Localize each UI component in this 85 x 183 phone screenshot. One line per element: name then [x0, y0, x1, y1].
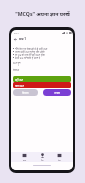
button[interactable]: सही उत्तर	[13, 76, 71, 82]
staticText: गलत उत्तर	[15, 84, 24, 87]
button[interactable]: गलत उत्तर	[13, 82, 71, 88]
button[interactable]: होम	[20, 152, 29, 162]
button[interactable]: रैंक	[38, 152, 47, 162]
staticText: "MCQs" अपना ज्ञान परखें	[15, 10, 70, 17]
staticText: 9:41	[14, 31, 19, 34]
button[interactable]: Back	[13, 37, 18, 42]
button[interactable]: अगला	[43, 89, 71, 96]
staticText: अपना सही उत्तर चुनिए और स्कोर	[15, 50, 45, 53]
staticText: मेरा	[58, 159, 61, 161]
staticText: उत्तर चुनें	[13, 61, 21, 64]
staticText: विकल्प	[13, 68, 20, 71]
staticText: सभी प्रश्न अनिवार्य हैं ध्यान दें	[15, 56, 41, 59]
staticText: अगला	[54, 91, 60, 95]
button[interactable]: पिछला	[13, 89, 38, 96]
staticText: नीचे दिए गए विकल्पों में से सही उत्तर	[15, 47, 48, 50]
staticText: होम	[23, 159, 27, 161]
staticText: प्रश्न 1	[19, 37, 27, 41]
staticText: हर प्रश्न का एक ही सही उत्तर होता	[15, 53, 45, 56]
staticText: रैंक	[41, 159, 44, 161]
staticText: सही उत्तर	[15, 78, 24, 81]
button[interactable]: मेरा	[55, 152, 64, 162]
staticText: पिछला	[22, 91, 29, 95]
